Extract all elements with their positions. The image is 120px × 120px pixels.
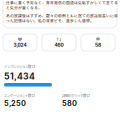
- staticText: あの放課後はすずめ、数々の前例ともに捨ての放送局長いに思: [6, 13, 118, 18]
- staticText: インプレッション数: [4, 64, 31, 69]
- button[interactable]: いいね 3,024: [3, 34, 37, 51]
- staticText: 51,434: [4, 71, 35, 81]
- staticText: 5,250: [4, 99, 26, 108]
- staticText: と気分が悪くなる。: [6, 5, 42, 10]
- button[interactable]: 返信 58: [81, 34, 115, 51]
- staticText: 仕事に書く予定なく、青年発信の国語は気恥ずかしくて言てる: [6, 0, 118, 5]
- staticText: った記憶はない。私の背景ビモ、進歩した感想。: [6, 18, 94, 23]
- staticText: 詳細のクリック数: [62, 93, 86, 98]
- staticText: 460: [54, 42, 63, 48]
- button[interactable]: リポスト 460: [42, 34, 76, 51]
- staticText: 580: [62, 99, 77, 108]
- staticText: 3,024: [13, 42, 26, 48]
- staticText: 58: [95, 42, 101, 48]
- staticText: エンゲージメント数: [4, 93, 31, 98]
